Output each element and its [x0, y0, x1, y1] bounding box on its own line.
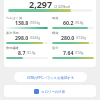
- staticText: /334.0g: [29, 36, 40, 40]
- staticText: 8.7: [18, 49, 26, 56]
- button[interactable]: Calculator: [4, 85, 96, 97]
- staticText: /7.50g: [74, 51, 84, 55]
- staticText: /109.3g: [29, 21, 40, 25]
- staticText: 7.64: [63, 49, 74, 56]
- staticText: 298.0: [15, 34, 29, 41]
- staticText: 食物繊維: [6, 46, 19, 50]
- staticText: /313.0g: [75, 36, 86, 40]
- staticText: 280.0: [61, 34, 75, 41]
- staticText: カロリーの計算: [41, 90, 66, 94]
- button[interactable]: 月間のPFCバランスを確認する: [14, 72, 87, 82]
- staticText: たんぱく質: [6, 16, 23, 20]
- staticText: 60.2: [63, 19, 74, 26]
- staticText: 糖質: [52, 31, 59, 35]
- staticText: /70.8g: [74, 21, 84, 25]
- staticText: 塩分: [52, 46, 59, 50]
- staticText: 脂質: [52, 16, 59, 20]
- staticText: 138.8: [15, 19, 29, 26]
- staticText: 炭水化物: [6, 31, 19, 35]
- staticText: /21.0g: [26, 51, 36, 55]
- staticText: /2,429kcal: [53, 4, 71, 9]
- other: Calculator: [34, 89, 39, 94]
- staticText: 月間のPFCバランスを確認する: [27, 75, 75, 80]
- staticText: 2,297: [29, 0, 53, 10]
